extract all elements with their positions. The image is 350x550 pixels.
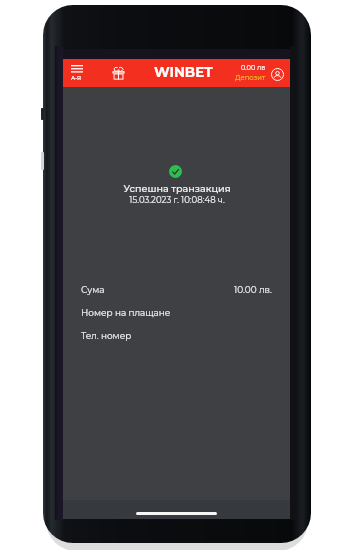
staticText: Успешна транзакция xyxy=(123,183,231,195)
button[interactable]: WINBET xyxy=(154,64,213,80)
staticText: 10.00 лв. xyxy=(234,284,272,295)
staticText: Тел. номер xyxy=(81,330,132,341)
staticText: 0.00 лв xyxy=(241,64,266,72)
button[interactable]: Тел. номер xyxy=(63,324,290,347)
staticText: Сума xyxy=(81,284,105,295)
staticText: Депозит xyxy=(235,73,266,81)
button[interactable]: Номер на плащане xyxy=(63,301,290,324)
staticText: WINBET xyxy=(154,64,213,80)
button[interactable]: Account xyxy=(267,64,288,85)
button[interactable]: Promotions xyxy=(108,63,129,84)
button[interactable]: Сума xyxy=(63,278,290,301)
button[interactable]: 0.00 лв xyxy=(231,63,267,84)
staticText: А-Я xyxy=(71,75,82,82)
staticText: 15.03.2023 г. 10:08:48 ч. xyxy=(129,195,225,205)
button[interactable]: Menu xyxy=(67,61,87,83)
staticText: Номер на плащане xyxy=(81,307,171,318)
